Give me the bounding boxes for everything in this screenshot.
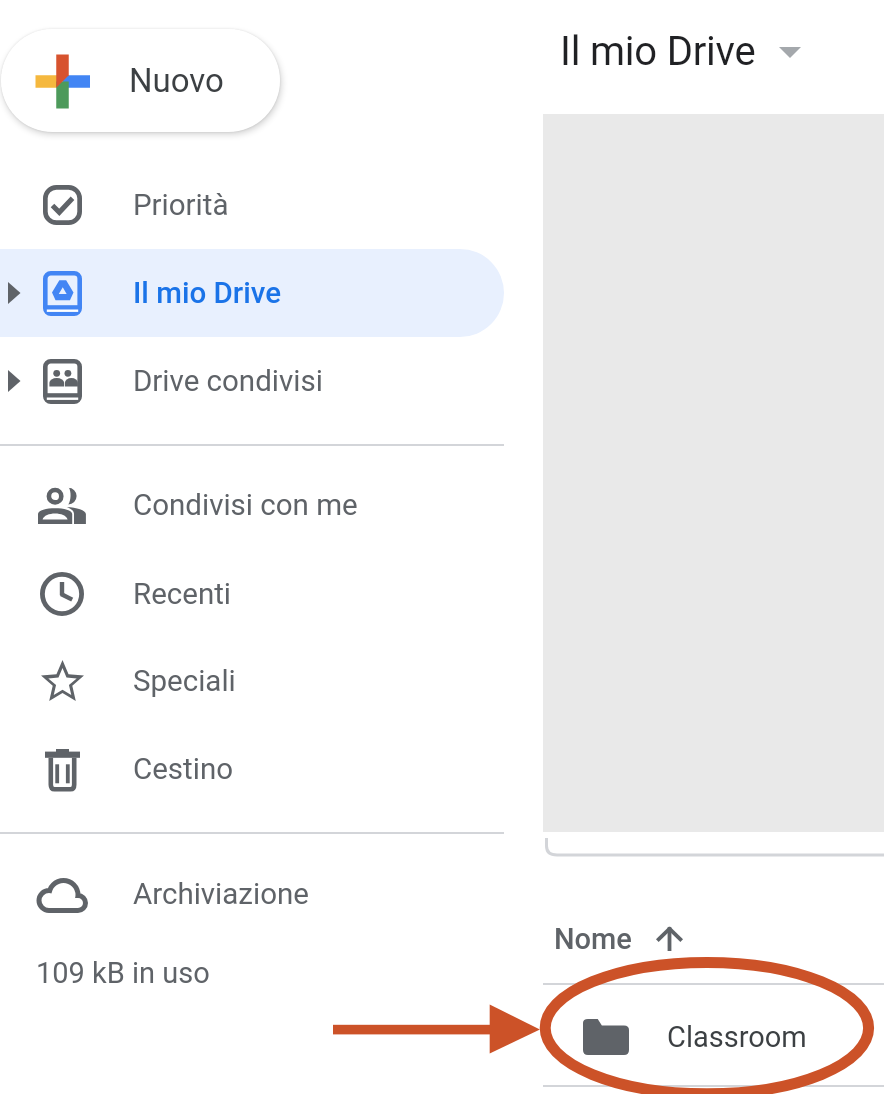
staticText: Priorità <box>133 188 229 223</box>
button[interactable]: Ordina per nome, crescente <box>656 926 683 952</box>
button[interactable]: Cestino <box>0 725 884 813</box>
button[interactable]: Speciali <box>0 637 884 725</box>
staticText: Speciali <box>133 664 236 699</box>
staticText: Classroom <box>667 1020 807 1054</box>
button[interactable]: Condivisi con me <box>0 461 884 549</box>
staticText: Recenti <box>133 577 232 612</box>
button[interactable]: Priorità <box>0 161 884 249</box>
staticText: Cestino <box>133 752 234 787</box>
button[interactable]: Classroom <box>543 987 884 1087</box>
button[interactable]: Recenti <box>0 550 884 638</box>
button[interactable]: Nuovo <box>1 29 280 132</box>
button[interactable]: Il mio Drive <box>560 28 807 74</box>
button[interactable]: Archiviazione <box>0 850 884 938</box>
staticText: Il mio Drive <box>133 276 282 311</box>
staticText: Nuovo <box>129 61 224 100</box>
staticText: 109 kB in uso <box>36 956 210 990</box>
staticText: Il mio Drive <box>560 28 756 74</box>
button[interactable]: Apri menu Il mio Drive <box>773 28 807 74</box>
staticText: Drive condivisi <box>133 364 323 399</box>
staticText: Archiviazione <box>133 877 309 912</box>
button[interactable]: Drive condivisi <box>0 337 884 425</box>
button[interactable]: Il mio Drive <box>0 249 884 337</box>
staticText: Condivisi con me <box>133 488 358 523</box>
staticText: Nome <box>554 922 632 956</box>
button[interactable]: Nome <box>554 916 683 962</box>
